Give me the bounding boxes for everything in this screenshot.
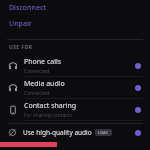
button[interactable]: Disconnect bbox=[0, 0, 150, 16]
staticText: LDAC bbox=[98, 130, 109, 135]
staticText: Phone calls bbox=[24, 57, 62, 67]
staticText: Unpair bbox=[9, 19, 32, 29]
button[interactable]: Toggle bbox=[126, 105, 142, 115]
staticText: Connected bbox=[24, 68, 50, 75]
button[interactable]: Use high-quality audio bbox=[0, 124, 150, 141]
button[interactable]: Contact sharing bbox=[0, 99, 150, 120]
button[interactable]: Media audio bbox=[0, 77, 150, 98]
button[interactable]: Phone calls bbox=[0, 55, 150, 76]
staticText: Connected bbox=[24, 90, 50, 97]
staticText: Media audio bbox=[24, 79, 65, 89]
staticText: For sharing contacts bbox=[24, 112, 72, 119]
staticText: Use high-quality audio bbox=[23, 128, 92, 137]
staticText: USE FOR bbox=[9, 44, 33, 51]
button[interactable]: Unpair bbox=[0, 16, 150, 31]
button[interactable]: Toggle bbox=[126, 83, 142, 93]
staticText: Disconnect bbox=[9, 3, 47, 13]
button[interactable]: Toggle bbox=[126, 61, 142, 71]
button[interactable]: Toggle bbox=[126, 128, 142, 138]
staticText: Contact sharing bbox=[24, 101, 77, 111]
